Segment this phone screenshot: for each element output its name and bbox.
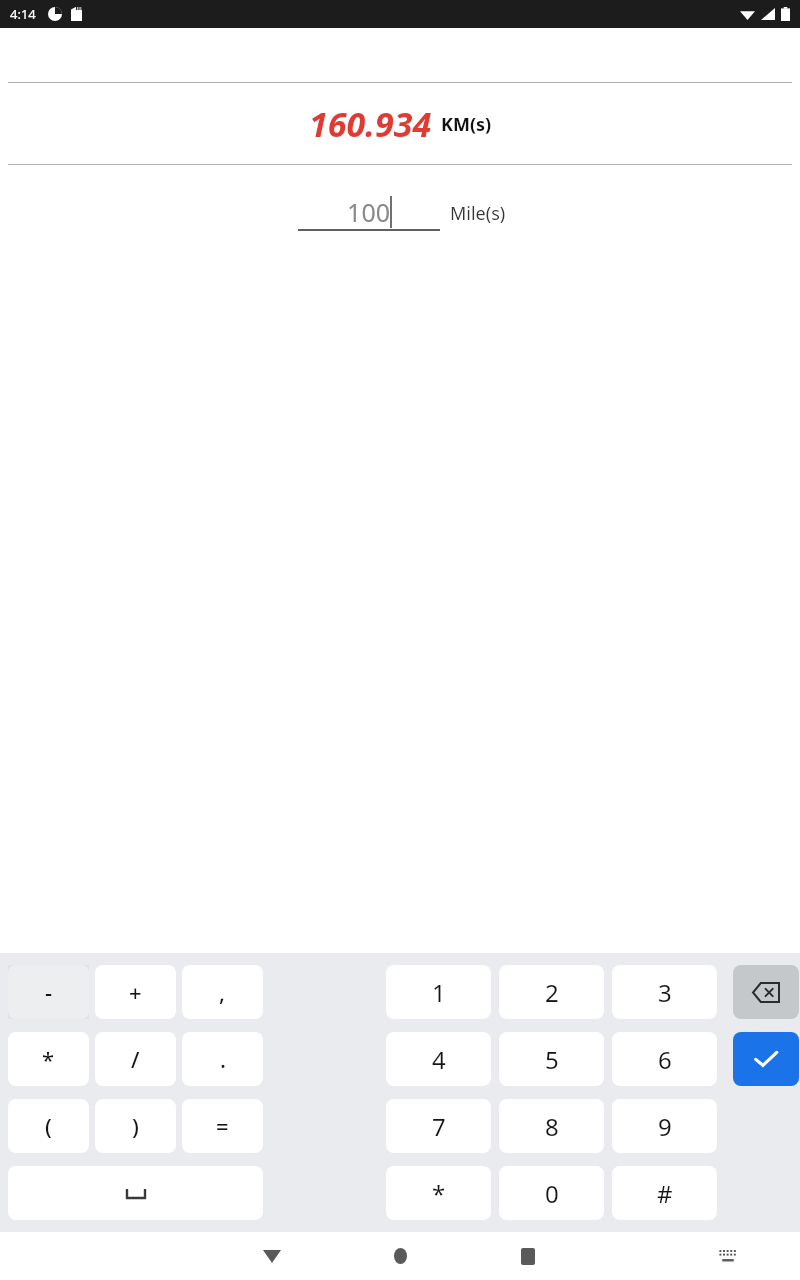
button[interactable]: 5 — [499, 1032, 604, 1086]
staticText: ) — [132, 1111, 139, 1141]
button[interactable]: * — [8, 1032, 89, 1086]
button[interactable]: 160.934 — [0, 83, 800, 164]
staticText: * — [432, 1177, 446, 1210]
button[interactable]: Hide keyboard — [248, 1232, 296, 1280]
button[interactable]: Switch keyboard — [704, 1232, 752, 1280]
button[interactable]: 4 — [386, 1032, 491, 1086]
staticText: . — [220, 1044, 226, 1074]
button[interactable]: Recents — [504, 1232, 552, 1280]
staticText: Mile(s) — [450, 201, 506, 226]
staticText: 100 — [298, 195, 390, 229]
staticText: * — [42, 1044, 55, 1074]
button[interactable]: Space — [8, 1166, 263, 1220]
button[interactable]: 100 — [298, 195, 440, 231]
button[interactable]: 1 — [386, 965, 491, 1019]
staticText: ( — [45, 1111, 52, 1141]
button[interactable]: ) — [95, 1099, 176, 1153]
staticText: # — [657, 1177, 673, 1210]
staticText: 7 — [432, 1110, 446, 1143]
staticText: / — [131, 1044, 140, 1074]
button[interactable]: 0 — [499, 1166, 604, 1220]
button[interactable]: = — [182, 1099, 263, 1153]
button[interactable]: * — [386, 1166, 491, 1220]
button[interactable]: 3 — [612, 965, 717, 1019]
staticText: 2 — [545, 976, 559, 1009]
button[interactable]: / — [95, 1032, 176, 1086]
staticText: 1 — [432, 976, 446, 1009]
button[interactable]: - — [8, 965, 89, 1019]
button[interactable]: 7 — [386, 1099, 491, 1153]
button[interactable]: , — [182, 965, 263, 1019]
staticText: 8 — [545, 1110, 559, 1143]
staticText: 9 — [658, 1110, 672, 1143]
staticText: = — [216, 1111, 229, 1141]
staticText: 6 — [658, 1043, 672, 1076]
button[interactable]: ( — [8, 1099, 89, 1153]
staticText: 160.934 — [309, 101, 432, 147]
staticText: 0 — [545, 1177, 559, 1210]
button[interactable]: + — [95, 965, 176, 1019]
button[interactable]: 6 — [612, 1032, 717, 1086]
staticText: , — [219, 977, 226, 1007]
staticText: 3 — [658, 976, 672, 1009]
staticText: 4:14 — [10, 5, 36, 23]
staticText: KM(s) — [441, 112, 492, 137]
staticText: 4 — [432, 1043, 446, 1076]
button[interactable]: 9 — [612, 1099, 717, 1153]
button[interactable]: 2 — [499, 965, 604, 1019]
staticText: - — [45, 977, 53, 1007]
button[interactable]: Home — [376, 1232, 424, 1280]
button[interactable]: Enter — [733, 1032, 799, 1086]
button[interactable]: # — [612, 1166, 717, 1220]
staticText: 5 — [545, 1043, 559, 1076]
staticText: + — [129, 977, 142, 1007]
button[interactable]: . — [182, 1032, 263, 1086]
button[interactable]: Backspace — [733, 965, 799, 1019]
button[interactable]: 8 — [499, 1099, 604, 1153]
